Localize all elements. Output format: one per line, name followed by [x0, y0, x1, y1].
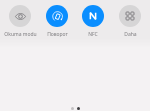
staticText: Okuma modu — [4, 31, 37, 38]
staticText: Daha — [124, 31, 137, 38]
button[interactable]: Okuma modu — [3, 5, 37, 38]
staticText: Поворот — [47, 31, 68, 38]
button[interactable]: Поворот — [40, 5, 74, 38]
staticText: NFC — [88, 31, 98, 38]
button[interactable]: Daha — [113, 5, 147, 38]
button[interactable]: NFC — [76, 5, 110, 38]
